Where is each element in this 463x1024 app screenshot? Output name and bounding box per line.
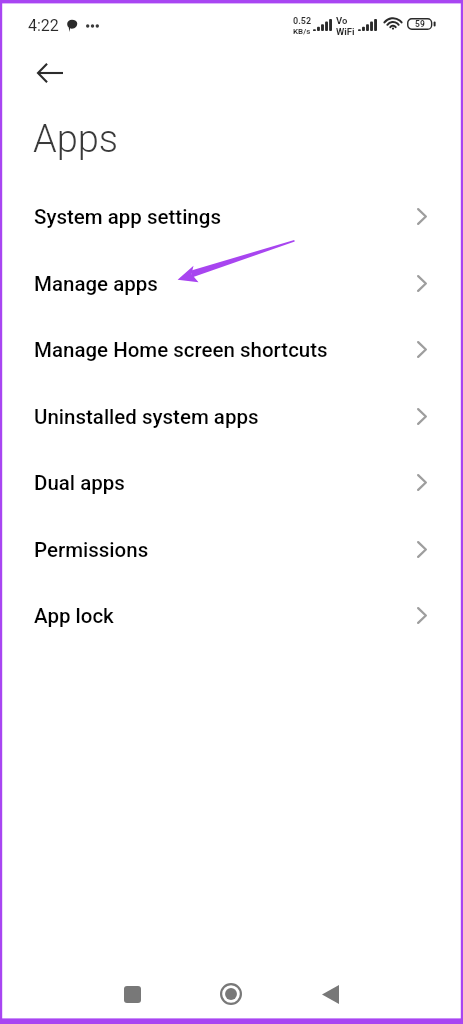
button[interactable]: Recent apps [107,969,157,1019]
button[interactable]: Manage Home screen shortcuts [0,316,463,383]
button[interactable]: Dual apps [0,449,463,516]
button[interactable]: System app settings [0,183,463,250]
button[interactable]: Back [28,51,72,95]
staticText: 59 [415,19,425,29]
staticText: Apps [33,117,119,162]
staticText: 0.52 [293,16,312,27]
staticText: Uninstalled system apps [34,405,259,429]
button[interactable]: Uninstalled system apps [0,383,463,450]
button[interactable]: Back [305,969,355,1019]
button[interactable]: Manage apps [0,250,463,317]
button[interactable]: Permissions [0,516,463,583]
staticText: Manage apps [34,272,158,296]
staticText: KB/s [293,27,311,36]
staticText: Permissions [34,538,149,562]
staticText: 4:22 [28,16,59,35]
button[interactable]: Home [206,969,256,1019]
staticText: App lock [34,604,114,628]
staticText: System app settings [34,205,221,229]
staticText: Vo [336,15,348,26]
staticText: WiFi [336,26,355,37]
staticText: Dual apps [34,471,125,495]
staticText: Manage Home screen shortcuts [34,338,328,362]
button[interactable]: App lock [0,582,463,649]
